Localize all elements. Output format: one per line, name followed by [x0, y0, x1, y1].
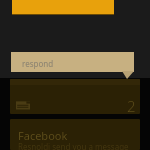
button[interactable]: Facebook: [10, 119, 140, 150]
button[interactable]: Messages: [10, 79, 140, 114]
staticText: 2: [127, 96, 136, 114]
button[interactable]: [12, 0, 114, 15]
staticText: respond: [22, 58, 54, 69]
button[interactable]: Messages: [14, 98, 34, 112]
button[interactable]: respond: [11, 52, 134, 72]
staticText: Resnoldi send you a message: [18, 141, 129, 150]
staticText: Facebook: [18, 128, 68, 143]
